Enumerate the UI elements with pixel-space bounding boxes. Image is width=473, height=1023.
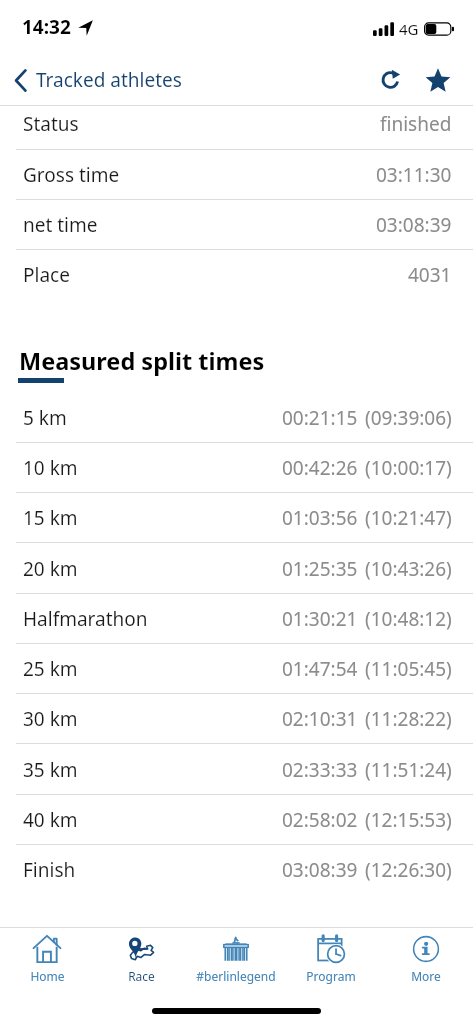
button[interactable]: Place xyxy=(0,250,473,300)
staticText: 40 km xyxy=(23,807,78,833)
staticText: (10:00:17) xyxy=(365,455,452,481)
button[interactable]: Race xyxy=(94,928,188,990)
staticText: Home xyxy=(30,968,65,984)
button[interactable]: Status xyxy=(0,106,473,146)
staticText: 35 km xyxy=(23,757,78,783)
staticText: 20 km xyxy=(23,556,78,582)
staticText: 01:30:21 xyxy=(282,606,358,632)
staticText: Halfmarathon xyxy=(23,606,148,632)
staticText: 10 km xyxy=(23,455,78,481)
staticText: Program xyxy=(306,968,356,984)
staticText: (09:39:06) xyxy=(365,405,452,431)
staticText: Measured split times xyxy=(19,345,265,377)
staticText: (11:28:22) xyxy=(365,706,452,732)
button[interactable]: 20 km xyxy=(0,543,473,594)
staticText: (10:21:47) xyxy=(365,505,452,531)
button[interactable]: Tracked athletes xyxy=(0,61,192,99)
staticText: (11:05:45) xyxy=(365,656,452,682)
button[interactable]: net time xyxy=(0,200,473,250)
staticText: Gross time xyxy=(23,162,120,188)
button[interactable]: Finish xyxy=(0,845,473,895)
staticText: 4G xyxy=(399,19,419,39)
staticText: Race xyxy=(128,968,155,984)
staticText: More xyxy=(411,968,441,984)
button[interactable]: 35 km xyxy=(0,744,473,795)
staticText: 03:08:39 xyxy=(282,857,358,883)
button[interactable]: Gross time xyxy=(0,150,473,200)
staticText: 15 km xyxy=(23,505,78,531)
staticText: (10:48:12) xyxy=(365,606,452,632)
staticText: 03:08:39 xyxy=(376,212,452,238)
staticText: 25 km xyxy=(23,656,78,682)
staticText: 01:47:54 xyxy=(282,656,358,682)
button[interactable]: 15 km xyxy=(0,493,473,543)
staticText: 14:32 xyxy=(22,14,71,40)
button[interactable]: 25 km xyxy=(0,644,473,694)
button[interactable]: 5 km xyxy=(0,393,473,443)
button[interactable]: 10 km xyxy=(0,443,473,493)
staticText: (10:43:26) xyxy=(365,556,452,582)
staticText: 00:21:15 xyxy=(282,405,358,431)
staticText: (11:51:24) xyxy=(365,757,452,783)
button[interactable]: #berlinlegend xyxy=(188,928,283,990)
button[interactable]: Program xyxy=(283,928,378,990)
button[interactable]: 30 km xyxy=(0,694,473,744)
staticText: Status xyxy=(23,111,79,137)
staticText: 03:11:30 xyxy=(376,162,452,188)
staticText: Place xyxy=(23,262,70,288)
staticText: 02:10:31 xyxy=(282,706,358,732)
staticText: 4031 xyxy=(408,262,452,288)
staticText: 02:58:02 xyxy=(282,807,358,833)
staticText: 30 km xyxy=(23,706,78,732)
staticText: 02:33:33 xyxy=(282,757,358,783)
staticText: finished xyxy=(380,111,452,137)
button[interactable]: 40 km xyxy=(0,795,473,845)
button[interactable]: Halfmarathon xyxy=(0,594,473,644)
button[interactable]: More xyxy=(378,928,473,990)
staticText: Tracked athletes xyxy=(36,67,182,93)
button[interactable]: Favorite xyxy=(416,58,460,102)
staticText: 01:03:56 xyxy=(282,505,358,531)
staticText: 01:25:35 xyxy=(282,556,358,582)
staticText: Finish xyxy=(23,857,76,883)
staticText: 00:42:26 xyxy=(282,455,358,481)
button[interactable]: Refresh xyxy=(369,58,413,102)
staticText: #berlinlegend xyxy=(196,968,276,984)
staticText: (12:26:30) xyxy=(365,857,452,883)
button[interactable]: Home xyxy=(0,928,94,990)
staticText: net time xyxy=(23,212,98,238)
staticText: (12:15:53) xyxy=(365,807,452,833)
staticText: 5 km xyxy=(23,405,67,431)
